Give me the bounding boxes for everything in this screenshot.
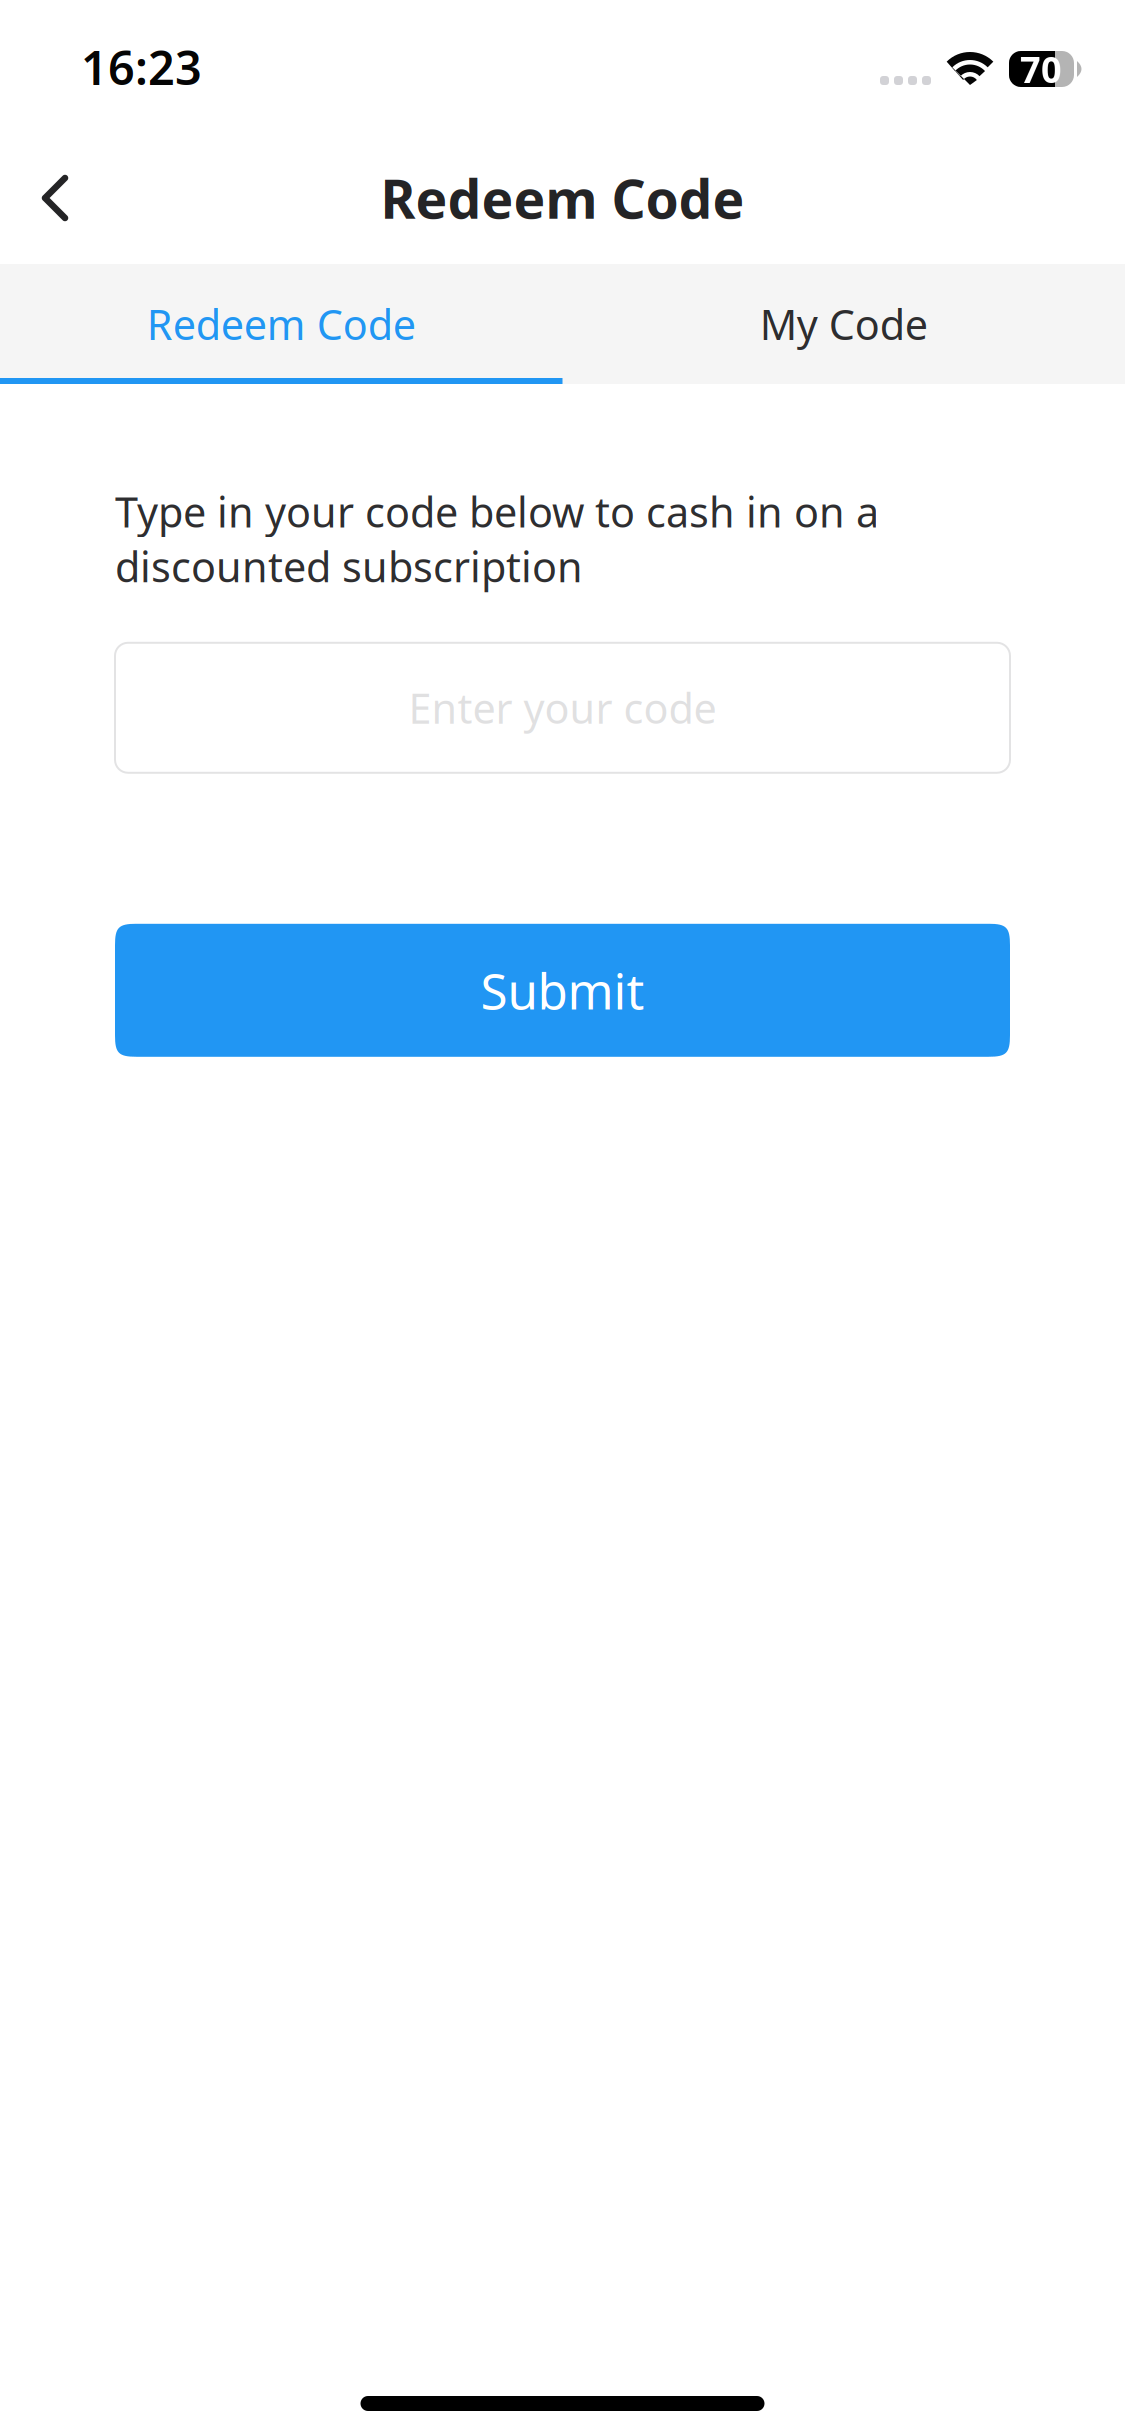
staticText: Submit [480,957,644,1023]
button[interactable]: Submit [115,924,1010,1057]
button[interactable]: Enter your code [115,643,1010,773]
staticText: My Code [760,297,928,351]
staticText: Type in your code below to cash in on a … [115,484,879,594]
button[interactable]: Back [14,141,96,255]
staticText: Enter your code [408,680,716,735]
staticText: 70 [1020,45,1062,93]
button[interactable]: My Code [562,264,1125,384]
staticText: Redeem Code [147,297,416,351]
button[interactable]: Redeem Code [0,264,562,384]
staticText: Redeem Code [380,163,744,233]
staticText: 16:23 [81,36,202,98]
